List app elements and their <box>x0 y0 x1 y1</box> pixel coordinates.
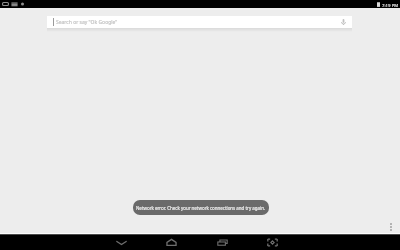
button[interactable]: Voice search <box>339 16 348 28</box>
button[interactable]: Recent apps <box>216 236 229 249</box>
button[interactable]: More options <box>385 221 397 233</box>
button[interactable]: Expand screen <box>266 236 279 249</box>
button[interactable]: Home <box>165 236 178 249</box>
staticText: Search or say "Ok Google" <box>56 19 118 26</box>
button[interactable]: Back <box>115 236 128 249</box>
staticText: 7:19 PM <box>382 2 399 8</box>
button[interactable]: Search or say "Ok Google" <box>47 16 352 28</box>
staticText: Network error. Check your network connec… <box>136 205 266 211</box>
